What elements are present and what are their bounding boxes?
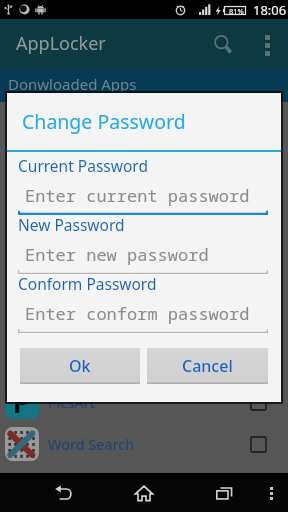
staticText: Enter new password	[25, 243, 209, 266]
staticText: PicsArt	[48, 392, 95, 412]
button[interactable]: Search	[206, 27, 242, 63]
staticText: Conform Password	[18, 273, 157, 294]
button[interactable]: Back	[46, 475, 82, 511]
button[interactable]: Recents	[206, 475, 242, 511]
staticText: AppLocker	[16, 31, 106, 56]
staticText: Enter current password	[25, 184, 250, 207]
button[interactable]: PicsArt	[0, 381, 288, 423]
button[interactable]: Cancel	[147, 348, 268, 384]
staticText: New Password	[18, 214, 125, 235]
staticText: Cancel	[182, 355, 233, 377]
staticText: Ok	[69, 355, 91, 377]
button[interactable]: Menu	[258, 480, 284, 506]
staticText: 18:06	[253, 1, 287, 19]
staticText: Donwloaded Apps	[8, 74, 137, 94]
button[interactable]: Ok	[20, 348, 140, 384]
button[interactable]: Word Search	[0, 423, 288, 465]
button[interactable]: More options	[251, 29, 283, 61]
staticText: Word Search	[48, 434, 135, 454]
staticText: Enter conform password	[25, 302, 250, 325]
button[interactable]: Home	[126, 475, 162, 511]
staticText: Current Password	[18, 155, 148, 176]
staticText: Change Password	[22, 108, 186, 135]
staticText: 81%	[229, 6, 244, 16]
